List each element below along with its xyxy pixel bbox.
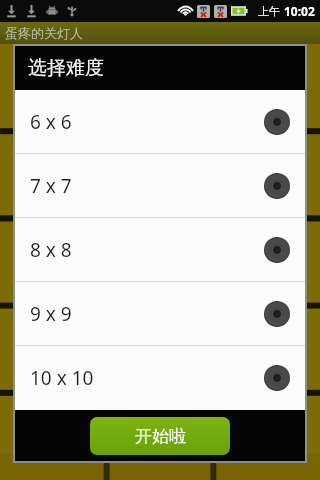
other: Select difficulty option <box>263 364 291 392</box>
staticText: 10 x 10 <box>30 365 263 391</box>
staticText: 8 x 8 <box>30 237 263 263</box>
staticText: 10:02 <box>284 3 315 19</box>
other: Select difficulty option <box>263 172 291 200</box>
button[interactable]: 7 x 7 <box>15 154 305 217</box>
staticText: 上午 <box>258 4 280 18</box>
other: Select difficulty option <box>263 300 291 328</box>
other: Select difficulty option <box>263 236 291 264</box>
staticText: 6 x 6 <box>30 109 263 135</box>
staticText: 9 x 9 <box>30 301 263 327</box>
button[interactable]: 10 x 10 <box>15 346 305 409</box>
staticText: 开始啦 <box>135 426 186 447</box>
other: Select difficulty option <box>263 108 291 136</box>
staticText: 蛋疼的关灯人 <box>5 25 83 41</box>
button[interactable]: 6 x 6 <box>15 90 305 153</box>
staticText: 选择难度 <box>28 56 104 80</box>
button[interactable]: 开始啦 <box>90 417 230 455</box>
button[interactable]: 9 x 9 <box>15 282 305 345</box>
button[interactable]: 8 x 8 <box>15 218 305 281</box>
staticText: 7 x 7 <box>30 173 263 199</box>
